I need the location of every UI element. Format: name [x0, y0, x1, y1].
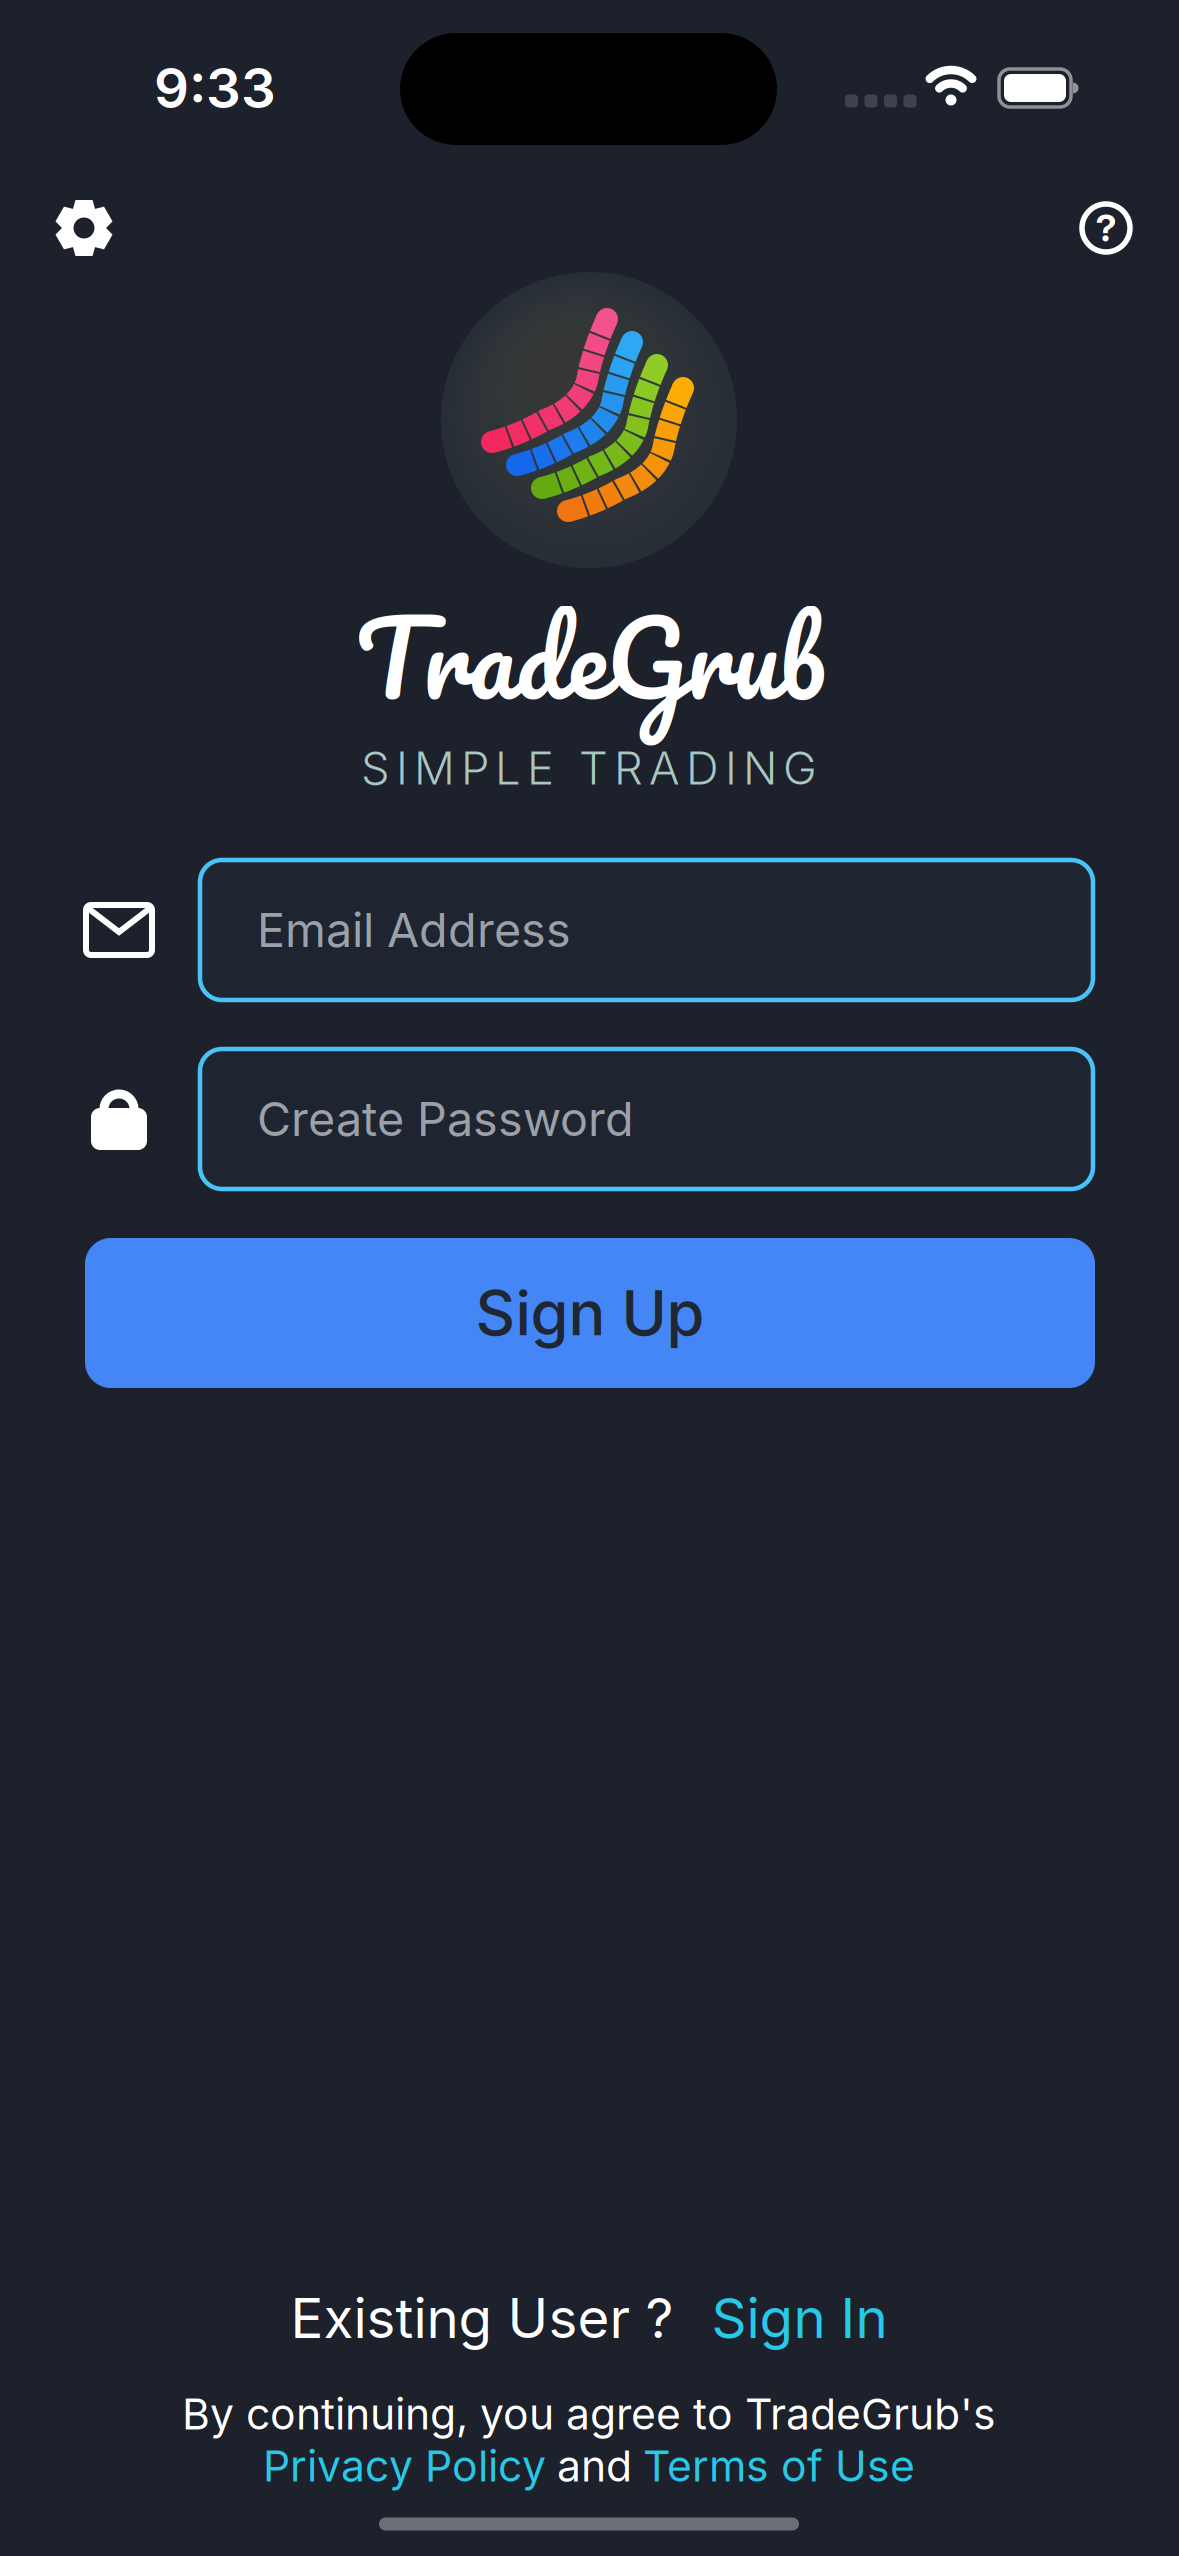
staticText: TradeGrub: [355, 569, 826, 745]
staticText: Sign Up: [475, 1277, 704, 1349]
button[interactable]: Terms of Use: [643, 2441, 915, 2491]
staticText: 9:33: [154, 56, 276, 120]
button[interactable]: Create Password: [200, 1049, 1093, 1189]
staticText: Existing User ?: [290, 2286, 673, 2350]
button[interactable]: Email Address: [200, 860, 1093, 1000]
staticText: Create Password: [257, 1091, 634, 1147]
button[interactable]: Settings: [42, 186, 126, 270]
staticText: SIMPLE TRADING: [361, 741, 817, 795]
button[interactable]: Privacy Policy: [263, 2441, 546, 2491]
staticText: and: [557, 2441, 632, 2491]
button[interactable]: Sign In: [711, 2286, 887, 2350]
staticText: Email Address: [257, 902, 571, 958]
staticText: Sign In: [711, 2286, 887, 2350]
button[interactable]: Help: [1064, 186, 1148, 270]
staticText: By continuing, you agree to TradeGrub's: [182, 2389, 996, 2439]
button[interactable]: Sign Up: [85, 1238, 1095, 1388]
staticText: Privacy Policy: [263, 2441, 546, 2491]
staticText: ?: [1095, 206, 1116, 250]
staticText: Terms of Use: [643, 2441, 915, 2491]
